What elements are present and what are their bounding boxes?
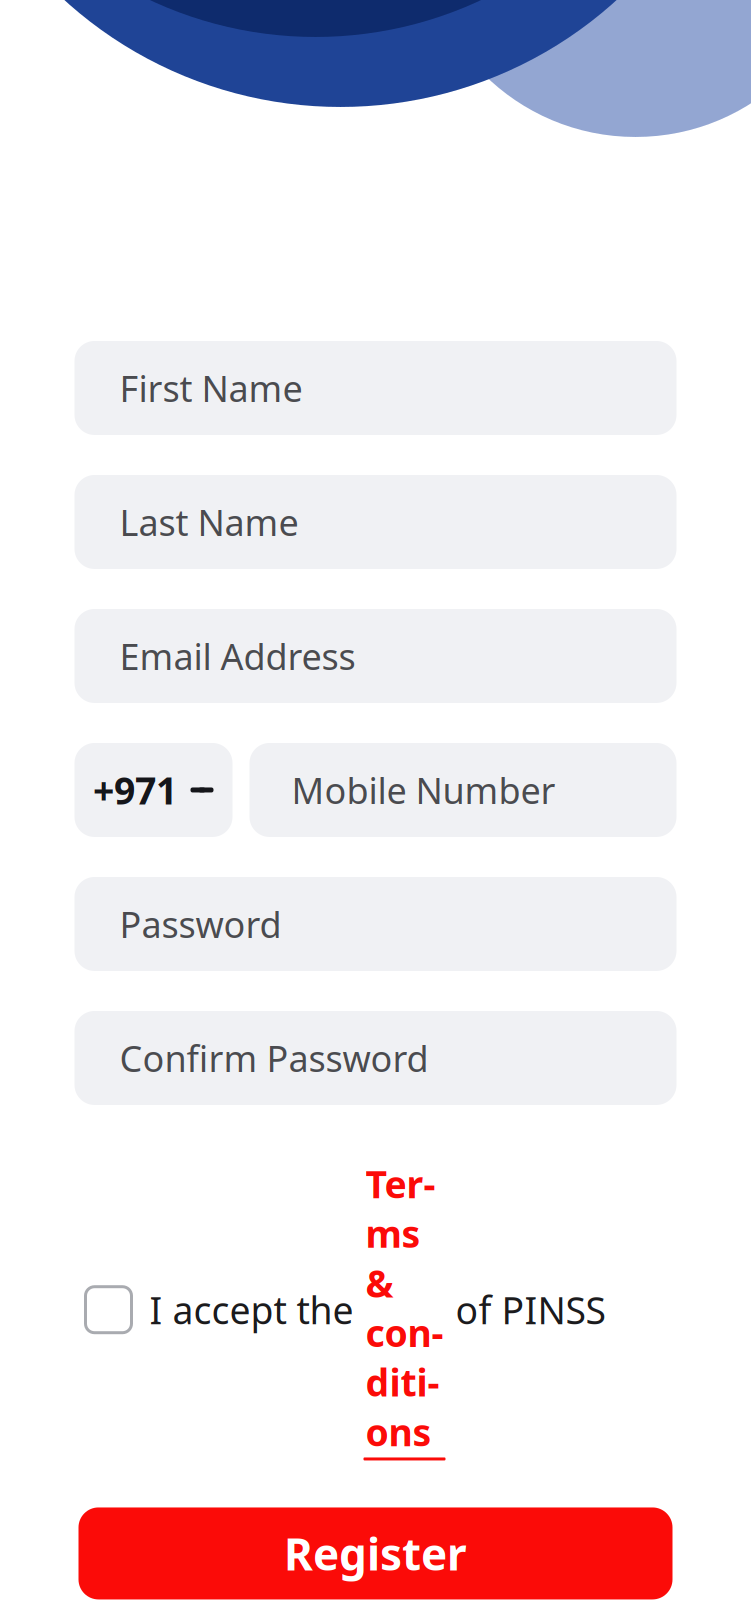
staticText: Register xyxy=(284,1524,467,1583)
staticText: Last Name xyxy=(119,498,298,546)
staticText: of PINSS xyxy=(445,1285,605,1334)
staticText: First Name xyxy=(119,364,302,412)
staticText: +971 xyxy=(93,765,177,815)
button[interactable]: Mobile Number xyxy=(249,743,676,837)
button[interactable]: Accept terms and conditions xyxy=(85,1287,131,1333)
staticText: I accept the xyxy=(149,1285,363,1334)
staticText: Password xyxy=(119,900,281,948)
button[interactable]: Register xyxy=(78,1507,672,1599)
staticText: Terms & conditions xyxy=(365,1159,443,1456)
staticText: Mobile Number xyxy=(291,766,555,814)
staticText: Email Address xyxy=(119,632,355,680)
staticText: Create Account xyxy=(152,0,599,7)
staticText: Confirm Password xyxy=(119,1034,428,1082)
button[interactable]: +971 xyxy=(74,743,232,837)
button[interactable]: Terms & conditions xyxy=(363,1159,445,1460)
